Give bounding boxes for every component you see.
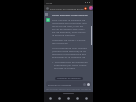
staticText: est de diamètre, nous pouvo — [52, 30, 86, 33]
staticText: ajoutant la circonférence des — [52, 52, 86, 55]
button[interactable]: Search — [66, 96, 71, 101]
staticText: Pour calculer la longueur de — [52, 18, 86, 21]
staticText: La circonférence d'un cylindre — [52, 46, 87, 49]
button[interactable]: Home — [57, 96, 62, 101]
staticText: nécessaire pour enrouler une — [52, 21, 87, 24]
staticText: 60 cm de largeur avec une c — [52, 27, 85, 30]
staticText: extrémités et la longueur de — [52, 55, 86, 58]
staticText: la formule suivante: — [52, 33, 76, 36]
button[interactable]: Attach — [83, 83, 86, 86]
button[interactable]: Profile — [89, 6, 93, 10]
staticText: Calcul longueur corde planche — [52, 13, 88, 16]
staticText: 10:24 — [46, 1, 53, 4]
button[interactable]: Menu — [84, 96, 89, 101]
button[interactable]: Améliorer les réponses — [55, 77, 83, 80]
staticText: Améliorer les réponses — [57, 77, 81, 80]
staticText: Envoyer un message — [48, 83, 72, 86]
button[interactable]: Calcul longueur corde planche — [44, 11, 93, 18]
button[interactable]: App icon — [46, 7, 49, 10]
button[interactable]: Back — [48, 96, 53, 101]
button[interactable]: Send — [87, 83, 90, 86]
staticText: arrondir le cordel) — [52, 66, 76, 69]
staticText: iPad ouvrir un nouveau fichier — [50, 7, 84, 10]
staticText: 1. Circonférence de l'extrémité — [52, 60, 88, 63]
button[interactable]: Notifications — [84, 7, 87, 10]
staticText: (comme votre planche) se cal — [52, 49, 87, 52]
staticText: Les réponses peuvent être inexactes. Vér… — [44, 88, 93, 91]
staticText: de 80 cm de haut, il est dis — [52, 24, 84, 27]
button[interactable]: Envoyer un message — [46, 81, 91, 87]
button[interactable]: Tabs — [75, 96, 80, 101]
staticText: Longueur de corde = Circonf — [52, 38, 86, 41]
staticText: de la planche — [52, 41, 68, 44]
staticText: supérieure (un cours comm — [52, 63, 87, 66]
